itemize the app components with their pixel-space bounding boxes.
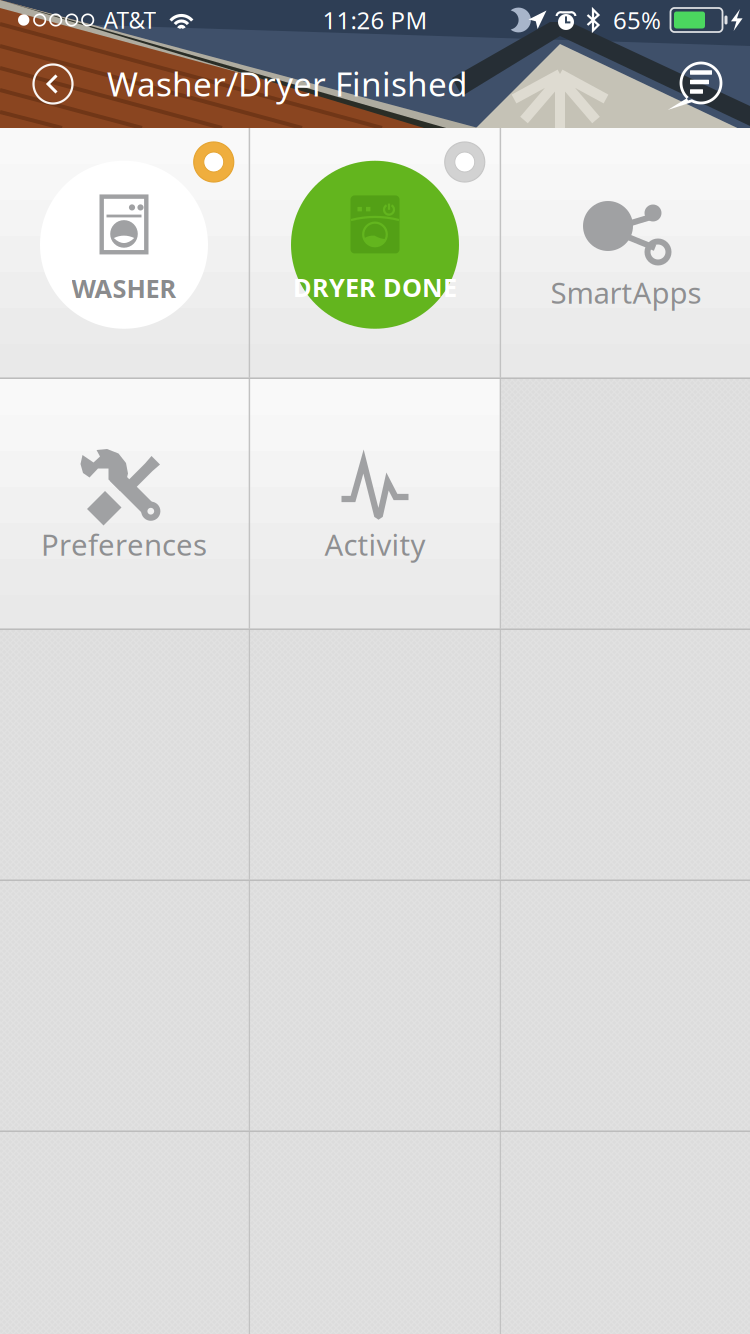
- staticText: Activity: [324, 525, 425, 564]
- staticText: SmartApps: [550, 273, 701, 312]
- staticText: Preferences: [41, 525, 207, 564]
- staticText: AT&T: [103, 5, 156, 35]
- button[interactable]: SmartApps: [501, 128, 750, 377]
- staticText: Washer/Dryer Finished: [107, 61, 468, 106]
- staticText: DRYER DONE: [293, 270, 457, 304]
- staticText: 11:26 PM: [322, 4, 427, 36]
- button[interactable]: Back: [17, 40, 89, 128]
- staticText: WASHER: [71, 271, 176, 305]
- staticText: 65%: [613, 4, 661, 36]
- button[interactable]: Messages: [661, 40, 741, 128]
- button[interactable]: WASHER: [0, 128, 249, 377]
- button[interactable]: DRYER DONE: [250, 128, 500, 377]
- button[interactable]: Activity: [250, 379, 500, 628]
- button[interactable]: Preferences: [0, 379, 249, 628]
